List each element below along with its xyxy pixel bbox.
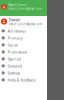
button[interactable]: Snoozed	[0, 62, 47, 69]
staticText: Daniel	[9, 17, 20, 22]
button[interactable]: Starred	[0, 55, 47, 62]
button[interactable]: Social	[0, 41, 47, 48]
button[interactable]: Promotions	[0, 48, 47, 55]
button[interactable]: Settings	[0, 69, 47, 76]
staticText: Daniel Jones	[8, 3, 26, 7]
staticText: Settings	[7, 70, 20, 75]
button[interactable]: Daniel	[0, 16, 47, 27]
staticText: Snoozed	[7, 63, 21, 68]
button[interactable]: Primary	[0, 34, 47, 41]
staticText: Primary	[7, 35, 22, 40]
staticText: daniel.jones@gmail.com	[9, 22, 42, 26]
staticText: daniel.jones@gmail.com	[8, 7, 41, 10]
staticText: Starred	[7, 56, 20, 61]
staticText: Help & feedback	[7, 77, 35, 82]
staticText: Promotions	[7, 49, 27, 54]
button[interactable]: All inboxes	[0, 27, 47, 34]
button[interactable]: Help & feedback	[0, 76, 47, 83]
staticText: Social	[7, 42, 17, 47]
staticText: All inboxes	[7, 28, 26, 33]
